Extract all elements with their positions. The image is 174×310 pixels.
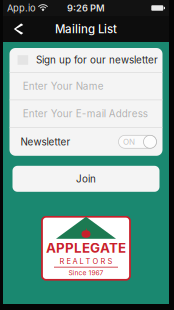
- button[interactable]: Newsletter: [112, 128, 162, 156]
- staticText: R E A L T O R S: [59, 257, 112, 266]
- staticText: Join: [76, 173, 96, 185]
- staticText: Newsletter: [21, 136, 71, 148]
- staticText: App.io: [7, 2, 36, 14]
- button[interactable]: Back: [3, 16, 31, 42]
- staticText: Sign up for our newsletter: [36, 54, 158, 66]
- button[interactable]: Join: [12, 166, 159, 192]
- staticText: APPLEGATE: [46, 240, 126, 256]
- staticText: Enter Your Name: [23, 80, 104, 92]
- staticText: ON: [123, 137, 135, 147]
- staticText: Enter Your E-mail Address: [23, 108, 148, 120]
- staticText: Mailing List: [55, 22, 117, 36]
- staticText: 9:26 PM: [67, 2, 105, 14]
- staticText: Since 1967: [68, 269, 103, 277]
